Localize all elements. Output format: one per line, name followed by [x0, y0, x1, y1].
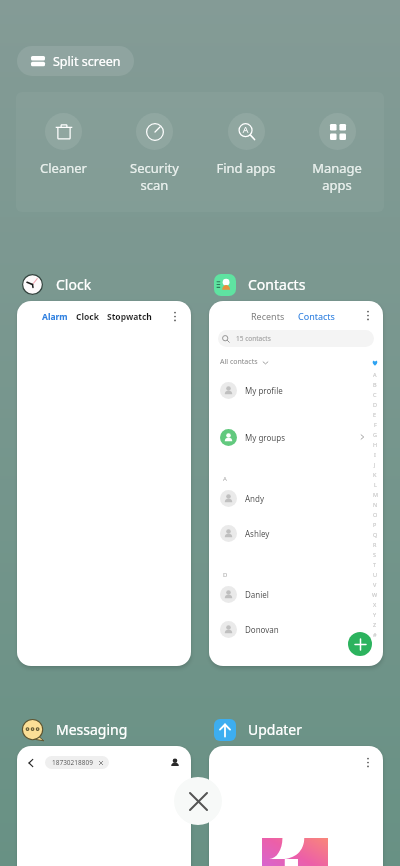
staticText: N [373, 501, 378, 508]
staticText: Y [373, 611, 377, 618]
button[interactable]: Split screen [17, 46, 134, 76]
staticText: V [373, 581, 377, 588]
staticText: Andy [245, 493, 265, 504]
staticText: 18730218809 [52, 758, 93, 767]
button[interactable]: Add contact [348, 632, 372, 656]
staticText: Contacts [298, 310, 335, 322]
staticText: Split screen [53, 53, 121, 70]
staticText: # [373, 631, 377, 638]
staticText: D [223, 571, 228, 579]
button[interactable]: Find apps [202, 92, 290, 212]
button[interactable]: Daniel [209, 582, 383, 606]
staticText: B [373, 381, 377, 388]
staticText: My profile [245, 385, 283, 396]
staticText: Cleaner [40, 159, 87, 177]
button[interactable] [209, 746, 383, 866]
staticText: D [373, 401, 378, 408]
staticText: Donovan [245, 624, 279, 635]
button[interactable]: Contacts [209, 267, 383, 301]
staticText: Messaging [56, 720, 128, 739]
staticText: Contacts [248, 275, 306, 294]
staticText: P [373, 521, 377, 528]
staticText: X [373, 601, 377, 608]
staticText: W [372, 591, 378, 598]
button[interactable]: Manage apps [293, 92, 381, 212]
staticText: C [373, 391, 377, 398]
staticText: Clock [76, 311, 99, 323]
staticText: All contacts [220, 357, 258, 367]
staticText: Find apps [216, 159, 276, 177]
staticText: J [374, 461, 376, 468]
button[interactable]: Close all [174, 777, 222, 825]
staticText: Alarm [42, 311, 68, 323]
staticText: R [373, 541, 377, 548]
staticText: T [373, 561, 377, 568]
staticText: Z [373, 621, 377, 628]
staticText: F [374, 421, 377, 428]
staticText: G [373, 431, 378, 438]
staticText: U [373, 571, 378, 578]
staticText: E [373, 411, 377, 418]
button[interactable]: 15 contacts [218, 330, 374, 347]
staticText: Ashley [245, 528, 270, 539]
button[interactable]: My groups [209, 425, 383, 449]
staticText: My groups [245, 432, 286, 443]
staticText: S [373, 551, 377, 558]
button[interactable]: Clock [17, 267, 191, 301]
staticText: Stopwatch [107, 311, 152, 323]
button[interactable]: 18730218809 [17, 746, 191, 866]
button[interactable]: My profile [209, 378, 383, 402]
staticText: Manage apps [312, 159, 362, 194]
button[interactable]: 18730218809 [45, 756, 109, 769]
staticText: M [373, 491, 378, 498]
button[interactable]: Donovan [209, 617, 383, 641]
staticText: L [374, 481, 377, 488]
staticText: Recents [251, 310, 285, 322]
staticText: K [373, 471, 377, 478]
staticText: Clock [56, 275, 92, 294]
button[interactable]: Alarm [17, 301, 191, 666]
staticText: H [373, 441, 378, 448]
button[interactable]: Recents [209, 301, 383, 666]
staticText: I [374, 451, 376, 458]
button[interactable]: Andy [209, 486, 383, 510]
button[interactable]: Security scan [110, 92, 198, 212]
staticText: 15 contacts [236, 334, 271, 343]
button[interactable]: Ashley [209, 521, 383, 545]
button[interactable]: Updater [209, 712, 383, 746]
staticText: Daniel [245, 589, 269, 600]
staticText: O [373, 511, 378, 518]
staticText: Updater [248, 720, 303, 739]
staticText: A [223, 475, 227, 483]
staticText: Q [373, 531, 378, 538]
staticText: Security scan [130, 159, 179, 194]
button[interactable]: Cleaner [19, 92, 107, 212]
staticText: A [373, 371, 377, 378]
button[interactable]: Messaging [17, 712, 191, 746]
